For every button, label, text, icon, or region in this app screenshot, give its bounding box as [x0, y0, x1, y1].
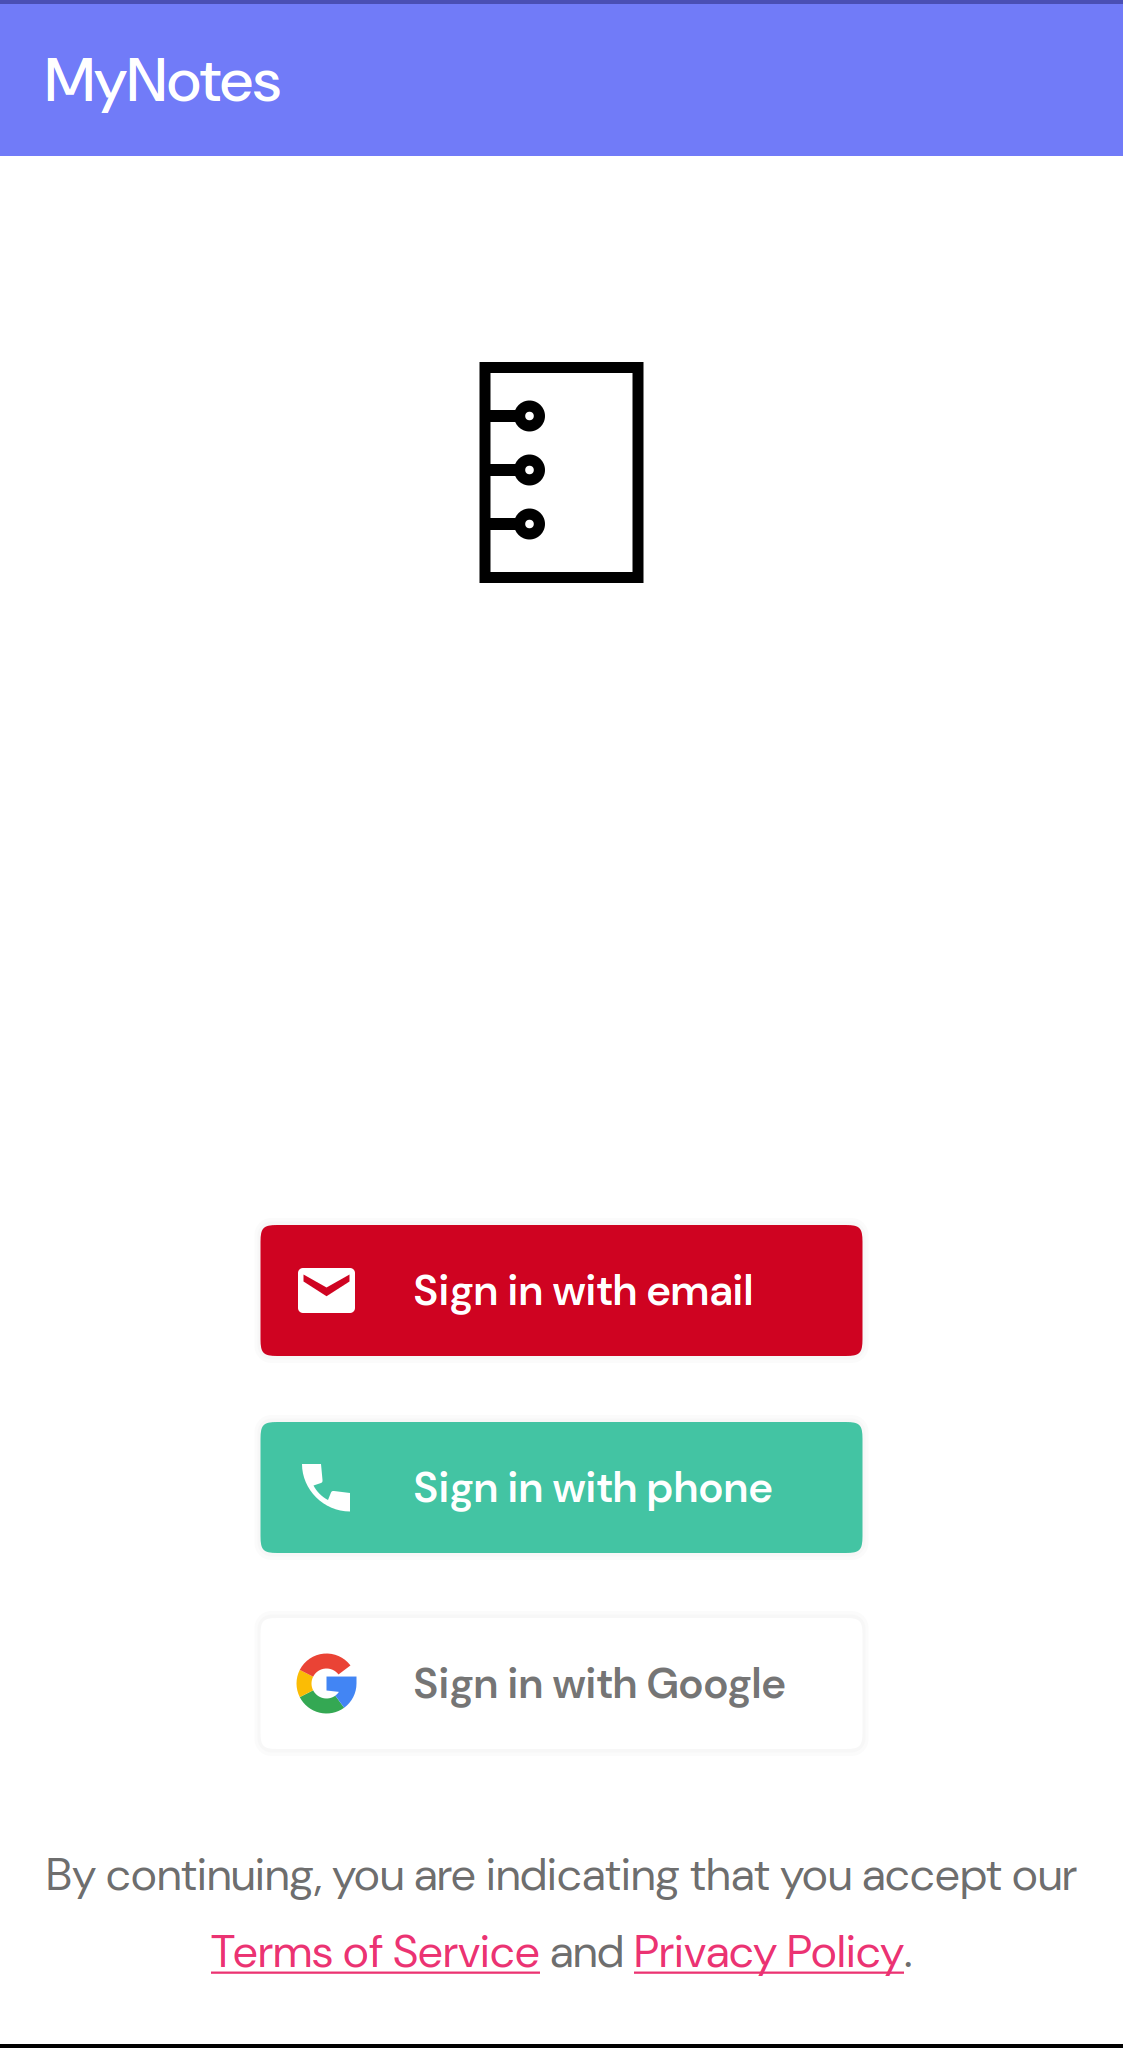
staticText: Terms of Service	[211, 1922, 540, 1981]
staticText: and	[540, 1922, 634, 1981]
button[interactable]: Terms of Service	[211, 1922, 540, 1981]
staticText: Sign in with Google	[413, 1656, 785, 1711]
staticText: Privacy Policy	[634, 1922, 904, 1981]
button[interactable]: Sign in with phone	[260, 1422, 862, 1553]
button[interactable]: Privacy Policy	[634, 1922, 904, 1981]
staticText: MyNotes	[45, 40, 281, 120]
staticText: Sign in with email	[413, 1263, 753, 1318]
button[interactable]: Sign in with Google	[260, 1618, 862, 1749]
staticText: Sign in with phone	[413, 1460, 772, 1515]
staticText: .	[904, 1922, 912, 1981]
staticText: By continuing, you are indicating that y…	[46, 1845, 1077, 1904]
button[interactable]: Sign in with email	[260, 1225, 862, 1356]
